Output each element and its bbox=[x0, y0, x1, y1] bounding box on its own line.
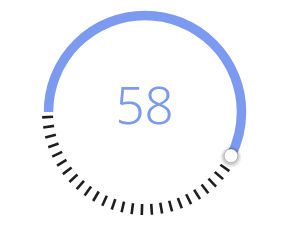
button[interactable]: Timer progress 58 bbox=[0, 0, 290, 232]
staticText: 58 bbox=[115, 69, 174, 138]
